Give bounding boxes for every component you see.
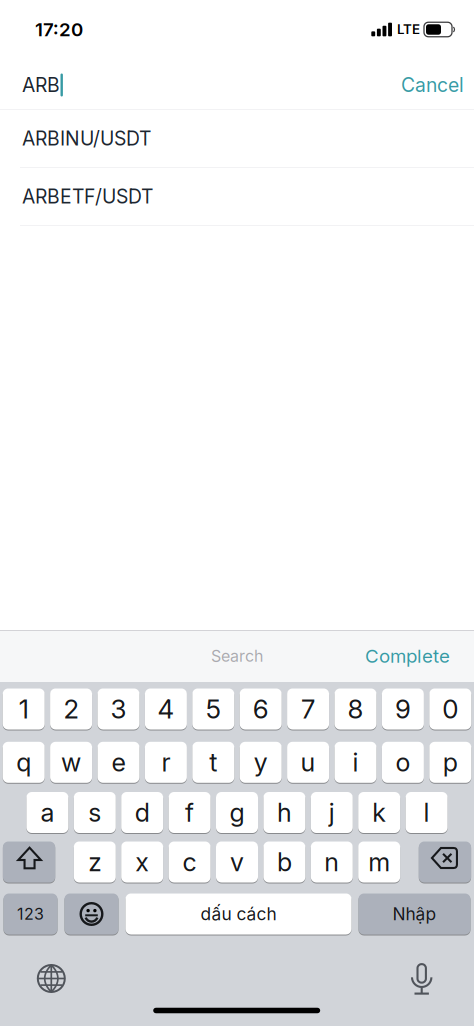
button[interactable]: p (429, 741, 471, 783)
staticText: c (183, 847, 197, 876)
staticText: o (395, 748, 410, 777)
button[interactable]: 7 (287, 688, 329, 730)
button[interactable]: y (240, 741, 282, 783)
button[interactable]: h (263, 791, 305, 833)
button[interactable]: Cancel (401, 74, 474, 96)
staticText: k (372, 798, 386, 827)
staticText: u (301, 748, 316, 777)
button[interactable]: j (311, 791, 353, 833)
staticText: 1 (19, 694, 29, 724)
button[interactable]: g (216, 791, 258, 833)
staticText: 3 (110, 694, 126, 724)
staticText: d (135, 798, 150, 827)
button[interactable]: i (334, 741, 376, 783)
staticText: 6 (253, 694, 269, 724)
button[interactable]: k (358, 791, 400, 833)
staticText: s (88, 798, 101, 827)
staticText: r (161, 748, 170, 777)
button[interactable]: 8 (334, 688, 376, 730)
button[interactable]: z (74, 841, 116, 883)
staticText: dấu cách (200, 904, 276, 924)
button[interactable]: c (169, 841, 211, 883)
button[interactable]: Next keyboard (36, 963, 66, 993)
button[interactable]: w (50, 741, 92, 783)
staticText: e (111, 748, 125, 777)
staticText: a (40, 798, 54, 827)
button[interactable]: f (169, 791, 211, 833)
staticText: y (254, 748, 268, 777)
staticText: ARB (22, 74, 60, 96)
button[interactable]: 5 (192, 688, 234, 730)
staticText: 17:20 (35, 19, 83, 40)
staticText: 8 (347, 694, 363, 724)
button[interactable]: d (121, 791, 163, 833)
staticText: i (352, 748, 358, 777)
staticText: p (443, 748, 458, 777)
staticText: 0 (442, 694, 458, 724)
button[interactable]: 9 (382, 688, 424, 730)
staticText: 123 (17, 905, 44, 923)
staticText: Cancel (401, 74, 464, 96)
staticText: j (329, 798, 335, 827)
staticText: b (277, 847, 292, 876)
staticText: ARBETF/USDT (22, 185, 153, 208)
staticText: 4 (157, 694, 174, 724)
staticText: h (277, 798, 292, 827)
staticText: 5 (206, 694, 221, 724)
button[interactable]: s (74, 791, 116, 833)
button[interactable]: v (216, 841, 258, 883)
button[interactable]: 6 (240, 688, 282, 730)
button[interactable]: Dictate (405, 962, 439, 996)
staticText: g (229, 798, 244, 827)
button[interactable]: dấu cách (125, 893, 351, 935)
button[interactable]: 2 (50, 688, 92, 730)
staticText: l (424, 798, 430, 827)
staticText: Nhập (392, 904, 436, 924)
button[interactable]: Complete (365, 645, 474, 667)
button[interactable]: a (26, 791, 68, 833)
button[interactable]: l (406, 791, 448, 833)
staticText: Complete (365, 645, 450, 667)
button[interactable]: Delete (419, 841, 471, 883)
staticText: Search (211, 647, 263, 665)
staticText: z (88, 847, 101, 876)
button[interactable]: q (3, 741, 45, 783)
button[interactable]: ARBETF/USDT (0, 168, 474, 225)
button[interactable]: ARBINU/USDT (0, 110, 474, 167)
button[interactable]: 1 (3, 688, 45, 730)
button[interactable]: n (311, 841, 353, 883)
button[interactable]: b (263, 841, 305, 883)
staticText: x (135, 847, 149, 876)
button[interactable]: x (121, 841, 163, 883)
button[interactable]: Emoji (64, 893, 118, 935)
button[interactable]: t (192, 741, 234, 783)
staticText: n (324, 847, 339, 876)
staticText: 9 (395, 694, 411, 724)
button[interactable]: o (382, 741, 424, 783)
button[interactable]: u (287, 741, 329, 783)
staticText: m (368, 847, 390, 876)
button[interactable]: e (97, 741, 139, 783)
button[interactable]: r (145, 741, 187, 783)
staticText: f (185, 798, 194, 827)
button[interactable]: 4 (145, 688, 187, 730)
staticText: LTE (397, 22, 420, 37)
button[interactable]: Search field (0, 73, 63, 96)
button[interactable]: Shift (3, 841, 55, 883)
button[interactable]: 0 (429, 688, 471, 730)
staticText: q (16, 748, 31, 777)
button[interactable]: Nhập (358, 893, 470, 935)
button[interactable]: 3 (97, 688, 139, 730)
staticText: 2 (64, 694, 79, 724)
staticText: v (230, 847, 244, 876)
button[interactable]: Numbers (3, 893, 57, 935)
staticText: w (61, 748, 81, 777)
staticText: 7 (301, 694, 315, 724)
staticText: t (209, 748, 217, 777)
staticText: ARBINU/USDT (22, 127, 151, 150)
button[interactable]: m (358, 841, 400, 883)
